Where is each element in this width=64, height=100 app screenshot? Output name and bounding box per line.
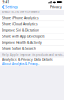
button[interactable]: Improve Health & Activity xyxy=(0,39,64,45)
button[interactable]: Settings xyxy=(0,4,19,10)
staticText: Share iPhone Analytics xyxy=(2,16,39,20)
staticText: Help Apple improve its products and serv… xyxy=(2,53,64,57)
staticText: Privacy xyxy=(50,5,62,9)
staticText: Share Safari & Search xyxy=(2,46,36,51)
staticText: About Analytics & Privacy… xyxy=(2,62,39,66)
button[interactable]: Improve Siri & Dictation xyxy=(0,27,64,33)
staticText: Share iCloud Analytics xyxy=(2,22,38,26)
button[interactable]: Analytics & Privacy Data Details xyxy=(0,57,64,65)
staticText: Share with App Developers xyxy=(2,34,45,38)
button[interactable]: Privacy xyxy=(50,4,64,10)
staticText: Settings xyxy=(5,5,18,9)
staticText: ANALYTICS & IMPROVEMENTS xyxy=(2,10,39,14)
button[interactable]: Share iCloud Analytics xyxy=(0,21,64,27)
staticText: Analytics & Privacy Data Details xyxy=(2,57,53,62)
button[interactable]: Share with App Developers xyxy=(0,33,64,39)
button[interactable]: Share Safari & Search xyxy=(0,46,64,51)
staticText: 9:41 xyxy=(2,0,9,4)
staticText: Improve Siri & Dictation xyxy=(2,28,39,32)
button[interactable]: Share iPhone Analytics xyxy=(0,15,64,21)
staticText: Improve Health & Activity xyxy=(2,40,42,45)
